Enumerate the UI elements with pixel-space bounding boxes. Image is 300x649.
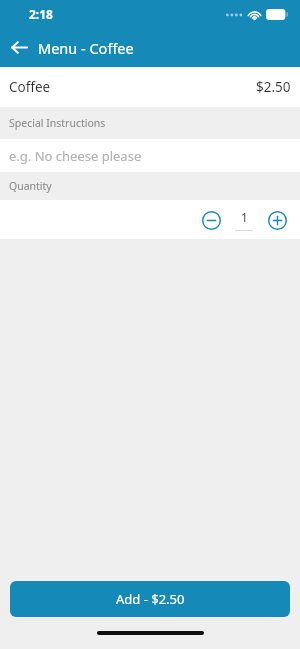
staticText: Quantity — [9, 179, 52, 193]
staticText: Menu - Coffee — [38, 38, 134, 58]
staticText: e.g. No cheese please — [9, 147, 142, 165]
staticText: $2.50 — [256, 78, 291, 96]
button[interactable]: Back — [0, 28, 38, 67]
button[interactable]: 1 — [226, 205, 262, 235]
staticText: Coffee — [9, 78, 51, 96]
button[interactable]: Coffee — [0, 67, 300, 107]
staticText: 1 — [241, 209, 248, 225]
button[interactable]: Add - $2.50 — [10, 581, 290, 617]
staticText: Special Instructions — [9, 116, 106, 130]
button[interactable]: Decrease quantity — [196, 205, 226, 235]
staticText: 2:18 — [29, 6, 53, 22]
button[interactable]: Increase quantity — [262, 205, 292, 235]
staticText: Add - $2.50 — [116, 590, 185, 608]
button[interactable]: e.g. No cheese please — [0, 139, 300, 172]
